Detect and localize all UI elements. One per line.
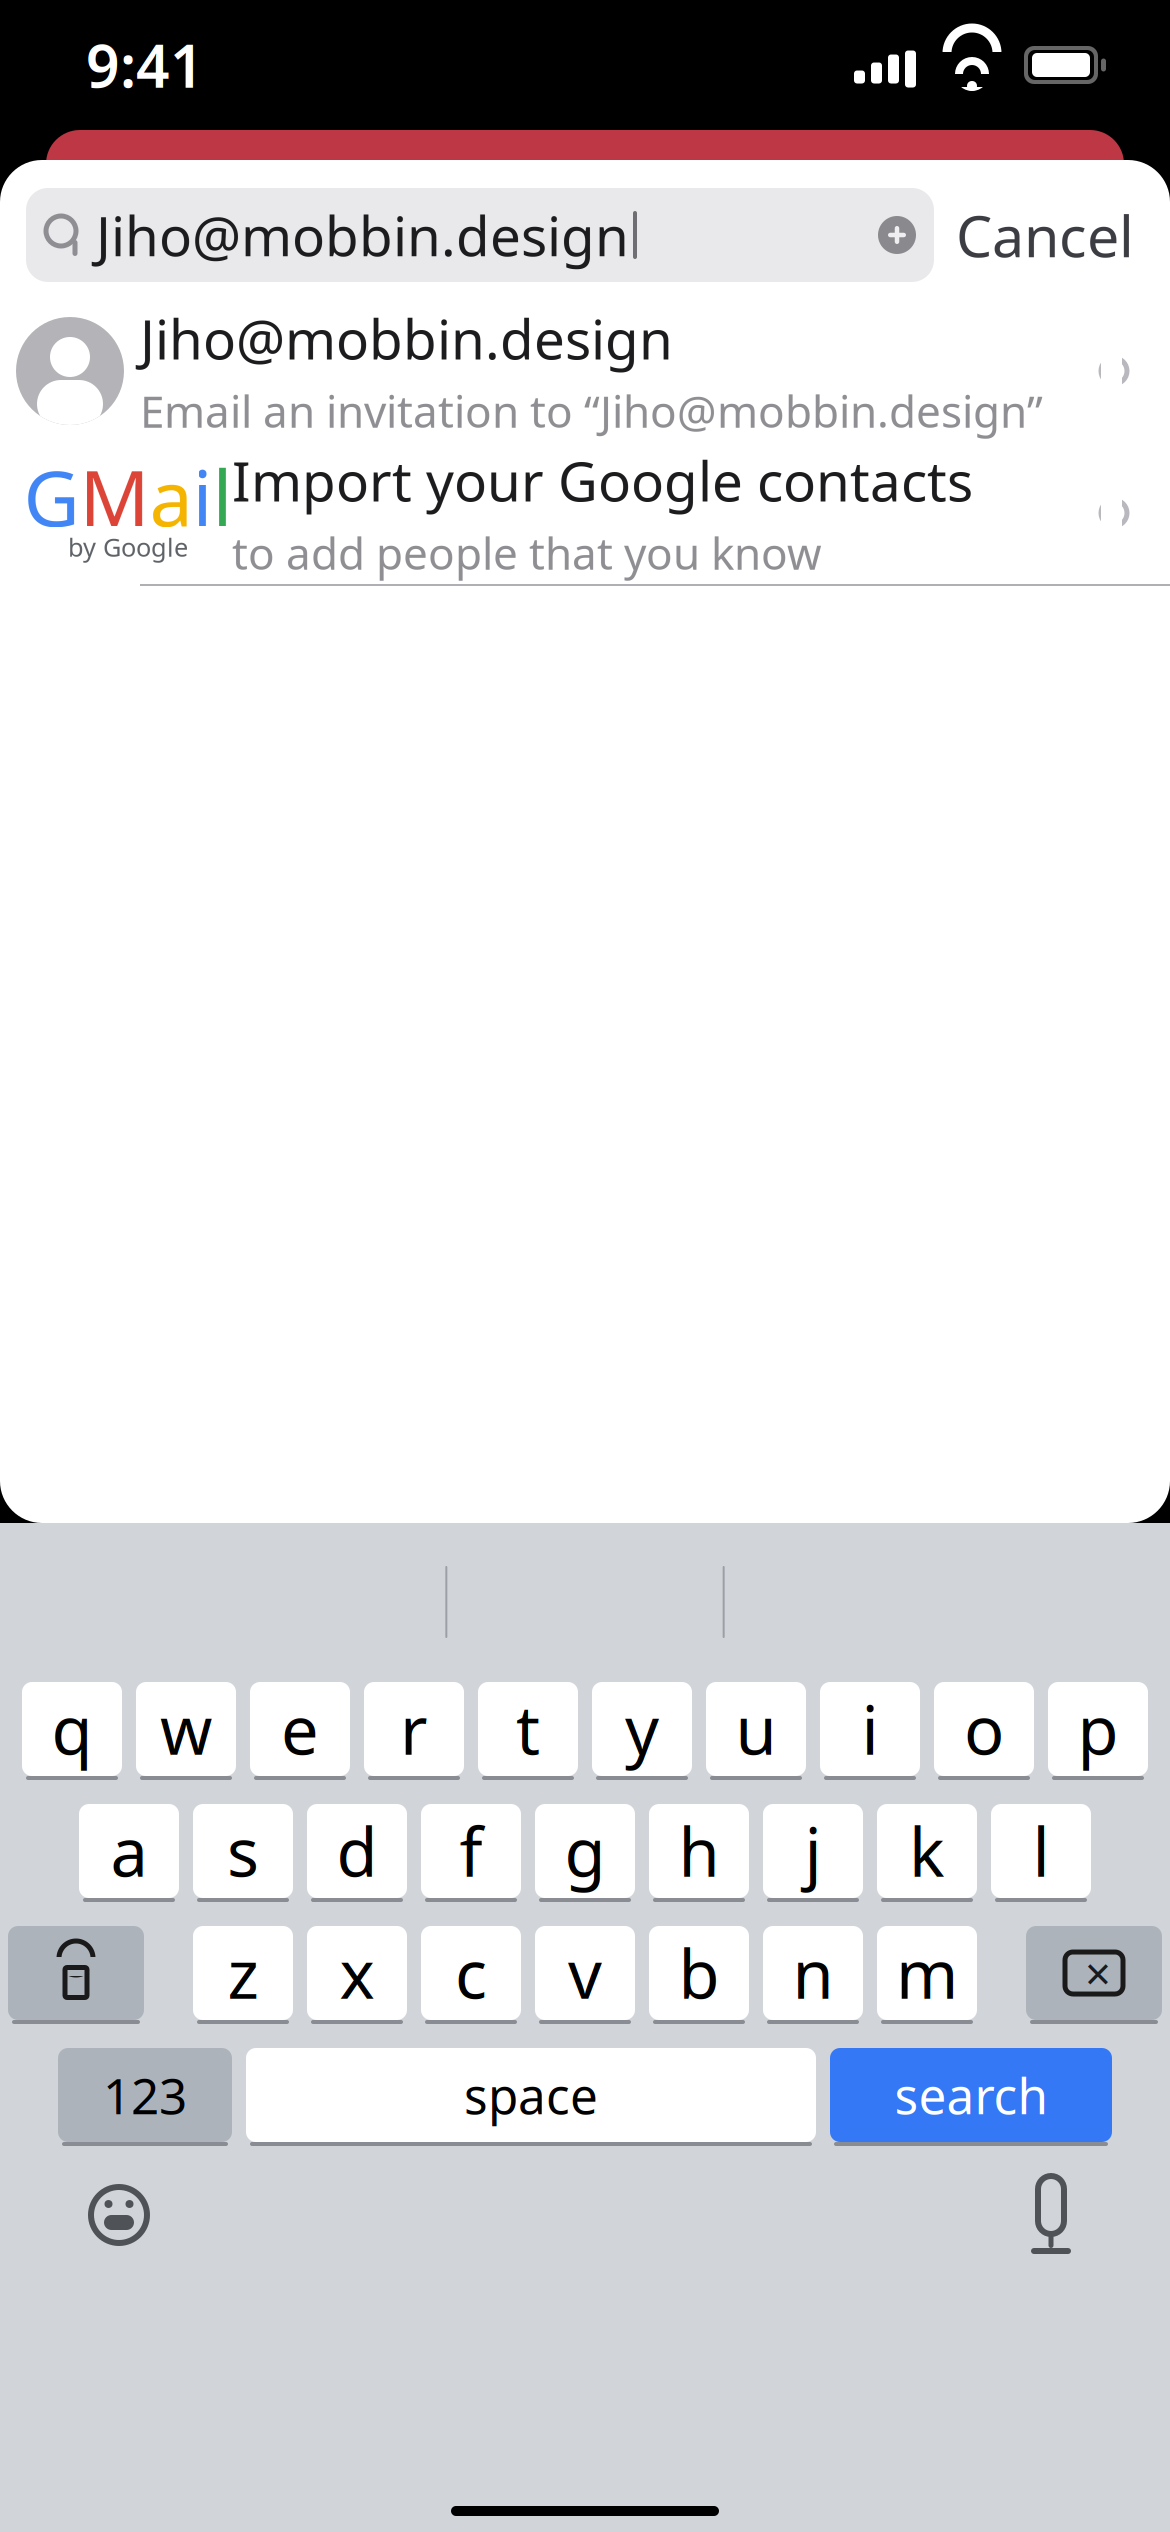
staticText: i xyxy=(861,1685,878,1773)
button[interactable]: s xyxy=(193,1803,293,1903)
staticText: o xyxy=(964,1685,1004,1773)
staticText: g xyxy=(564,1807,605,1895)
button[interactable]: d xyxy=(307,1803,407,1903)
staticText: f xyxy=(459,1807,482,1895)
button[interactable]: n xyxy=(763,1925,863,2025)
button[interactable]: G xyxy=(0,442,1170,584)
button[interactable]: v xyxy=(535,1925,635,2025)
button[interactable]: c xyxy=(421,1925,521,2025)
staticText: b xyxy=(678,1929,719,2017)
staticText: j xyxy=(804,1807,821,1895)
staticText: l xyxy=(212,445,232,547)
button[interactable]: a xyxy=(79,1803,179,1903)
staticText: Jiho@mobbin.design xyxy=(140,302,673,375)
staticText: by Google xyxy=(68,530,188,564)
staticText: d xyxy=(336,1807,377,1895)
button[interactable]: 123 xyxy=(58,2047,232,2147)
staticText: a xyxy=(110,1807,147,1895)
button[interactable]: m xyxy=(877,1925,977,2025)
staticText: z xyxy=(227,1929,258,2017)
staticText: e xyxy=(281,1685,319,1773)
staticText: M xyxy=(79,445,149,547)
button[interactable]: t xyxy=(478,1681,578,1781)
staticText: w xyxy=(160,1685,212,1773)
button[interactable]: Jiho@mobbin.design xyxy=(26,188,934,282)
staticText: t xyxy=(516,1685,540,1773)
button[interactable]: b xyxy=(649,1925,749,2025)
button[interactable]: i xyxy=(820,1681,920,1781)
staticText: Jiho@mobbin.design xyxy=(96,199,629,271)
staticText: a xyxy=(149,445,192,547)
staticText: 123 xyxy=(103,2062,187,2128)
staticText: y xyxy=(625,1685,659,1773)
staticText: h xyxy=(678,1807,719,1895)
button[interactable]: f xyxy=(421,1803,521,1903)
staticText: r xyxy=(400,1685,428,1773)
button[interactable]: g xyxy=(535,1803,635,1903)
staticText: k xyxy=(909,1807,945,1895)
button[interactable]: Shift xyxy=(8,1925,144,2025)
staticText: x xyxy=(339,1929,374,2017)
staticText: n xyxy=(792,1929,833,2017)
button[interactable]: q xyxy=(22,1681,122,1781)
staticText: i xyxy=(192,445,212,547)
staticText: 9:41 xyxy=(86,26,204,104)
staticText: v xyxy=(568,1929,602,2017)
staticText: Cancel xyxy=(956,197,1134,273)
staticText: u xyxy=(735,1685,776,1773)
button[interactable]: j xyxy=(763,1803,863,1903)
staticText: G xyxy=(23,445,79,547)
button[interactable]: Jiho@mobbin.design xyxy=(0,300,1170,442)
button[interactable]: w xyxy=(136,1681,236,1781)
button[interactable]: y xyxy=(592,1681,692,1781)
staticText: Email an invitation to “Jiho@mobbin.desi… xyxy=(140,382,1043,440)
button[interactable]: Cancel xyxy=(934,188,1156,282)
staticText: × xyxy=(1085,1943,1111,2003)
staticText: q xyxy=(51,1685,92,1773)
staticText: search xyxy=(894,2062,1047,2128)
button[interactable]: Delete xyxy=(1026,1925,1162,2025)
button[interactable]: z xyxy=(193,1925,293,2025)
staticText: s xyxy=(227,1807,259,1895)
staticText: space xyxy=(464,2062,598,2128)
button[interactable]: h xyxy=(649,1803,749,1903)
button[interactable]: Dictation xyxy=(1010,2171,1092,2259)
button[interactable]: p xyxy=(1048,1681,1148,1781)
staticText: to add people that you know xyxy=(232,524,822,582)
button[interactable]: Emoji keyboard xyxy=(78,2174,160,2256)
button[interactable]: k xyxy=(877,1803,977,1903)
button[interactable]: search xyxy=(830,2047,1112,2147)
staticText: m xyxy=(896,1929,958,2017)
button[interactable]: space xyxy=(246,2047,816,2147)
staticText: l xyxy=(1032,1807,1049,1895)
button[interactable]: r xyxy=(364,1681,464,1781)
button[interactable]: e xyxy=(250,1681,350,1781)
button[interactable]: x xyxy=(307,1925,407,2025)
button[interactable]: o xyxy=(934,1681,1034,1781)
button[interactable]: u xyxy=(706,1681,806,1781)
staticText: Import your Google contacts xyxy=(232,444,973,517)
staticText: c xyxy=(455,1929,487,2017)
staticText: p xyxy=(1077,1685,1118,1773)
button[interactable]: l xyxy=(991,1803,1091,1903)
